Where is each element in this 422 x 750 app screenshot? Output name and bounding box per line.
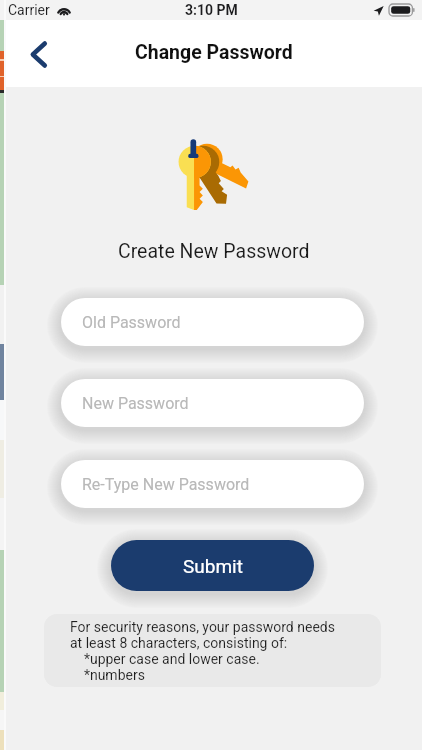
button[interactable]: Old Password (61, 298, 364, 346)
button[interactable]: Re-Type New Password (61, 460, 364, 508)
staticText: 3:10 PM (185, 2, 238, 18)
staticText: Change Password (135, 41, 293, 64)
staticText: Carrier (8, 2, 50, 18)
staticText: For security reasons, your password need… (70, 619, 335, 683)
staticText: New Password (82, 394, 189, 413)
staticText: Submit (183, 555, 243, 577)
button[interactable]: New Password (61, 379, 364, 427)
button[interactable]: Submit (111, 540, 314, 591)
staticText: Create New Password (118, 240, 310, 263)
staticText: Old Password (82, 313, 181, 332)
button[interactable]: Back (16, 32, 60, 76)
staticText: Re-Type New Password (82, 475, 250, 494)
